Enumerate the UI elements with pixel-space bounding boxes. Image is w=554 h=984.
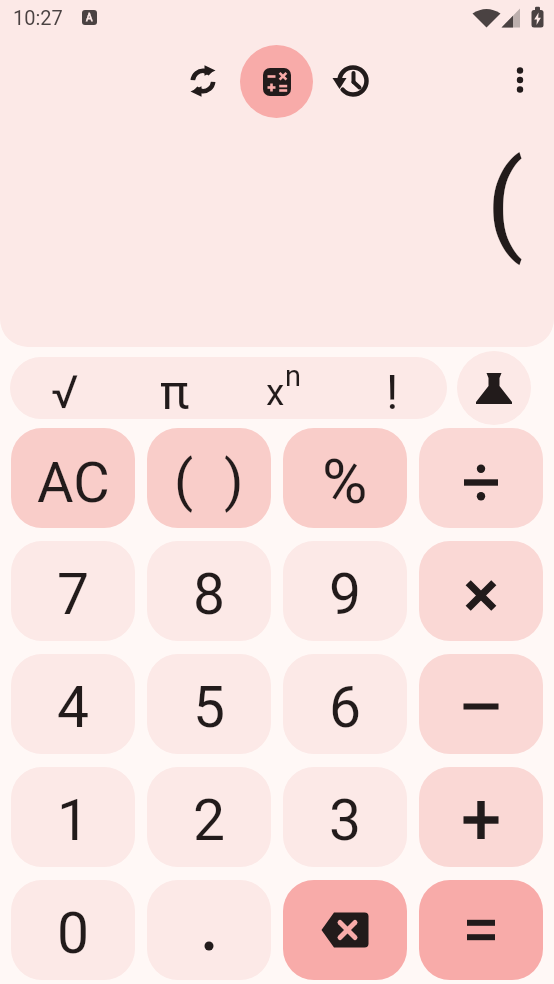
button[interactable]: π xyxy=(120,357,229,419)
staticText: 10:27 xyxy=(13,6,63,29)
staticText: 9 xyxy=(329,561,362,628)
staticText: AC xyxy=(37,450,110,516)
staticText: ( xyxy=(174,448,194,514)
staticText: % xyxy=(322,445,368,518)
staticText: 4 xyxy=(57,674,90,741)
button[interactable]: % xyxy=(283,428,407,528)
staticText: x xyxy=(266,371,285,414)
staticText: n xyxy=(285,359,302,393)
button[interactable] xyxy=(419,428,543,528)
button[interactable]: 7 xyxy=(11,541,135,641)
button[interactable] xyxy=(419,654,543,754)
button[interactable] xyxy=(457,351,531,425)
button[interactable] xyxy=(419,880,543,980)
button[interactable] xyxy=(329,59,373,103)
button[interactable] xyxy=(419,541,543,641)
button[interactable]: 2 xyxy=(147,767,271,867)
staticText: 7 xyxy=(57,561,90,628)
button[interactable]: ( xyxy=(147,428,271,528)
button[interactable]: AC xyxy=(11,428,135,528)
button[interactable]: 1 xyxy=(11,767,135,867)
staticText: 2 xyxy=(193,787,226,854)
button[interactable]: ! xyxy=(338,357,447,419)
button[interactable] xyxy=(147,880,271,980)
staticText: ) xyxy=(224,448,244,514)
button[interactable]: 6 xyxy=(283,654,407,754)
staticText: A xyxy=(86,12,93,24)
staticText: ! xyxy=(386,364,399,419)
button[interactable]: x xyxy=(229,357,338,419)
staticText: 0 xyxy=(57,900,90,967)
staticText: 1 xyxy=(57,787,90,854)
button[interactable]: 9 xyxy=(283,541,407,641)
button[interactable]: 3 xyxy=(283,767,407,867)
button[interactable] xyxy=(181,59,225,103)
button[interactable]: 0 xyxy=(11,880,135,980)
button[interactable] xyxy=(499,59,541,101)
button[interactable]: 5 xyxy=(147,654,271,754)
staticText: 6 xyxy=(329,674,362,741)
staticText: ( xyxy=(486,138,524,267)
button[interactable] xyxy=(419,767,543,867)
button[interactable]: 8 xyxy=(147,541,271,641)
staticText: 3 xyxy=(329,787,362,854)
button[interactable]: 4 xyxy=(11,654,135,754)
staticText: √ xyxy=(51,365,79,419)
button[interactable] xyxy=(283,880,407,980)
button[interactable] xyxy=(240,45,313,118)
button[interactable]: √ xyxy=(10,357,120,419)
staticText: π xyxy=(160,364,190,419)
staticText: 5 xyxy=(193,674,226,741)
staticText: 8 xyxy=(193,561,226,628)
